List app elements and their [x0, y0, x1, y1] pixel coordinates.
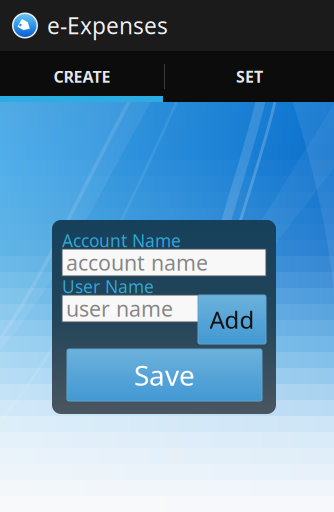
staticText: User Name — [62, 275, 154, 298]
button[interactable]: Save — [67, 349, 262, 401]
button[interactable]: Add — [198, 295, 266, 344]
staticText: e-Expenses — [47, 10, 168, 40]
staticText: Add — [209, 304, 254, 335]
staticText: Account Name — [62, 229, 181, 252]
staticText: account name — [66, 248, 208, 277]
button[interactable]: CREATE — [0, 51, 164, 102]
staticText: SET — [236, 66, 263, 87]
staticText: user name — [66, 294, 173, 323]
staticText: Save — [134, 356, 195, 394]
button[interactable]: SET — [165, 51, 334, 102]
staticText: CREATE — [53, 66, 110, 87]
